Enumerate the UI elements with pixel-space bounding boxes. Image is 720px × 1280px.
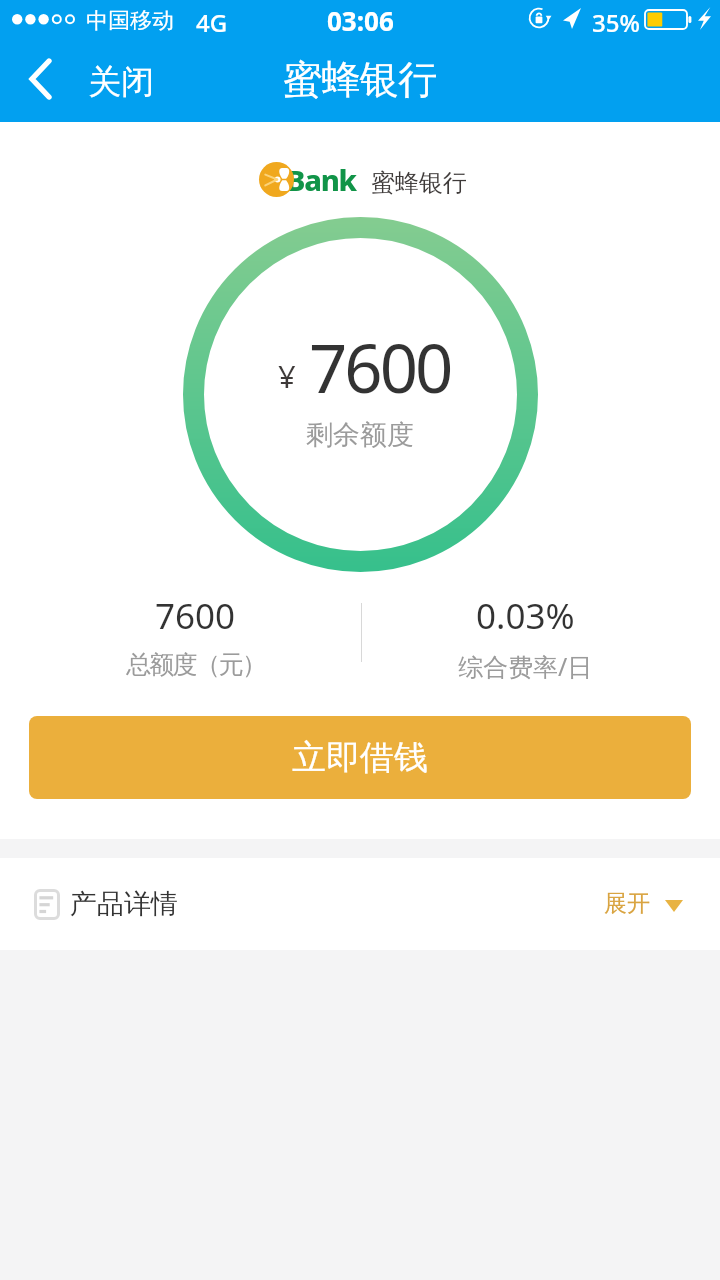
staticText: 0.03% [476,592,575,640]
staticText: 总额度（元） [126,649,266,680]
staticText: 蜜蜂银行 [283,55,437,104]
button[interactable]: 立即借钱 [29,716,691,799]
staticText: 4G [196,6,228,39]
button[interactable]: 产品详情 [0,858,720,950]
button[interactable]: 关闭 [0,48,180,114]
staticText: 7600 [309,321,451,412]
staticText: 产品详情 [70,887,178,921]
staticText: 剩余额度 [306,418,414,452]
staticText: 03:06 [327,3,394,38]
staticText: 蜜蜂银行 [371,168,467,198]
staticText: 综合费率/日 [458,649,593,683]
staticText: 展开 [604,889,650,918]
staticText: 关闭 [88,61,154,103]
staticText: 中国移动 [86,7,174,35]
staticText: ¥ [278,355,296,397]
staticText: Bank [286,160,356,199]
button[interactable]: 展开 [589,875,698,932]
staticText: 7600 [155,592,236,640]
staticText: 立即借钱 [292,736,428,779]
staticText: 35% [592,6,640,39]
